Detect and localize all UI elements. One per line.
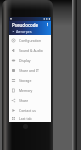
staticText: Storage (19, 78, 32, 83)
button[interactable]: Share and IT Options (9, 65, 51, 75)
button[interactable]: Sound & Audio modes (9, 45, 51, 55)
staticText: Sound & Audio modes (19, 48, 51, 53)
staticText: Contact us (19, 108, 36, 113)
button[interactable]: Display (9, 55, 51, 65)
button[interactable]: Home (23, 124, 28, 129)
staticText: Автотрек (16, 29, 32, 34)
button[interactable]: Memory (9, 85, 51, 95)
button[interactable]: Storage (9, 75, 51, 85)
button[interactable]: Contact us (9, 105, 51, 115)
button[interactable]: Configuration (9, 35, 51, 45)
staticText: Display (19, 58, 31, 63)
button[interactable]: Last tab (9, 115, 51, 122)
button[interactable]: Share (9, 95, 51, 105)
staticText: Configuration (19, 38, 41, 43)
staticText: Pseudocode (12, 22, 39, 28)
staticText: Last tab (19, 116, 32, 121)
button[interactable]: More options (45, 22, 50, 27)
staticText: Memory (19, 88, 33, 93)
staticText: Share and IT Options (19, 68, 51, 73)
staticText: Share (19, 98, 29, 103)
